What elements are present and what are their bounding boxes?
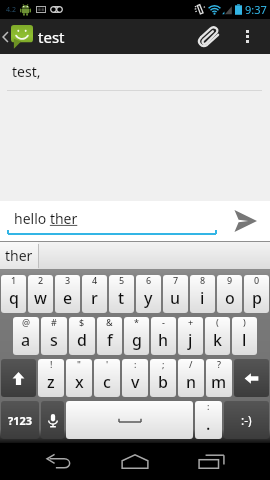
staticText: ' xyxy=(106,359,109,370)
staticText: 5 xyxy=(119,275,125,286)
staticText: # xyxy=(51,317,57,328)
button[interactable]: d xyxy=(69,317,95,355)
button[interactable]: Emoji xyxy=(224,401,269,439)
staticText: l xyxy=(242,329,247,351)
button[interactable]: x xyxy=(66,359,92,397)
staticText: z xyxy=(47,371,55,393)
staticText: 1 xyxy=(11,275,17,286)
button[interactable]: h xyxy=(151,317,176,355)
staticText: e xyxy=(63,287,73,309)
staticText: q xyxy=(9,287,19,309)
staticText: u xyxy=(170,287,181,309)
staticText: s xyxy=(50,329,58,351)
button[interactable]: Home xyxy=(97,443,173,480)
staticText: " xyxy=(77,359,81,370)
button[interactable]: p xyxy=(244,275,269,313)
button[interactable]: Space xyxy=(66,401,193,439)
button[interactable]: . xyxy=(195,401,222,439)
other: Back xyxy=(2,31,9,43)
staticText: 2 xyxy=(38,275,44,286)
staticText: 8 xyxy=(200,275,206,286)
button[interactable]: r xyxy=(82,275,107,313)
staticText: j xyxy=(188,329,193,351)
button[interactable]: Send xyxy=(220,201,270,241)
button[interactable]: u xyxy=(163,275,188,313)
button[interactable]: c xyxy=(94,359,120,397)
staticText: k xyxy=(213,329,222,351)
button[interactable]: o xyxy=(217,275,242,313)
button[interactable]: z xyxy=(38,359,64,397)
button[interactable]: f xyxy=(97,317,122,355)
staticText: : xyxy=(207,401,210,412)
staticText: 4 xyxy=(92,275,98,286)
button[interactable]: g xyxy=(124,317,149,355)
button[interactable]: v xyxy=(122,359,148,397)
button[interactable]: n xyxy=(178,359,204,397)
staticText: ! xyxy=(50,359,53,370)
staticText: o xyxy=(225,287,235,309)
button[interactable]: t xyxy=(109,275,134,313)
staticText: p xyxy=(252,287,262,309)
button[interactable]: Voice input xyxy=(41,401,64,439)
button[interactable]: b xyxy=(150,359,176,397)
staticText: & xyxy=(106,317,113,328)
staticText: r xyxy=(91,287,98,309)
staticText: n xyxy=(186,371,197,393)
button[interactable]: ther xyxy=(0,241,38,271)
staticText: ( xyxy=(216,317,219,328)
button[interactable]: Attach xyxy=(192,19,225,54)
staticText: y xyxy=(144,287,153,309)
button[interactable]: k xyxy=(205,317,230,355)
staticText: ? xyxy=(217,359,222,370)
staticText: h xyxy=(158,329,169,351)
staticText: $ xyxy=(79,317,85,328)
staticText: :-) xyxy=(241,412,252,428)
staticText: 0 xyxy=(254,275,260,286)
staticText: d xyxy=(77,329,87,351)
staticText: m xyxy=(211,371,227,393)
button[interactable]: e xyxy=(55,275,80,313)
staticText: 9:37 xyxy=(245,2,267,17)
staticText: w xyxy=(34,287,47,309)
staticText: t xyxy=(118,287,125,309)
button[interactable]: q xyxy=(1,275,26,313)
button[interactable]: Back xyxy=(21,443,97,480)
button[interactable]: Recent apps xyxy=(173,443,249,480)
staticText: + xyxy=(188,317,194,328)
staticText: ther xyxy=(5,246,33,265)
staticText: 3 xyxy=(65,275,71,286)
button[interactable]: s xyxy=(41,317,67,355)
staticText: 7 xyxy=(173,275,179,286)
staticText: x xyxy=(75,371,84,393)
staticText: test, xyxy=(12,62,41,81)
button[interactable]: More options xyxy=(225,19,270,54)
button[interactable]: y xyxy=(136,275,161,313)
staticText: ; xyxy=(162,359,165,370)
staticText: 6 xyxy=(146,275,152,286)
staticText: a xyxy=(21,329,31,351)
button[interactable]: j xyxy=(178,317,203,355)
staticText: hello ther xyxy=(14,209,78,228)
staticText: test xyxy=(38,27,65,47)
button[interactable]: Back xyxy=(0,19,69,54)
button[interactable]: a xyxy=(13,317,39,355)
staticText: : xyxy=(134,359,137,370)
staticText: b xyxy=(158,371,168,393)
staticText: v xyxy=(131,371,140,393)
staticText: c xyxy=(103,371,111,393)
button[interactable]: Shift xyxy=(1,359,36,397)
staticText: f xyxy=(107,329,113,351)
button[interactable]: Symbols xyxy=(1,401,39,439)
staticText: i xyxy=(200,287,205,309)
staticText: . xyxy=(206,413,211,435)
staticText: / xyxy=(189,359,193,370)
staticText: 4.2 xyxy=(6,5,16,15)
button[interactable]: w xyxy=(28,275,53,313)
button[interactable]: l xyxy=(232,317,257,355)
staticText: ?123 xyxy=(8,413,33,428)
staticText: * xyxy=(134,317,139,328)
staticText: g xyxy=(132,329,142,351)
button[interactable]: m xyxy=(206,359,232,397)
button[interactable]: i xyxy=(190,275,215,313)
button[interactable]: Delete xyxy=(234,359,269,397)
